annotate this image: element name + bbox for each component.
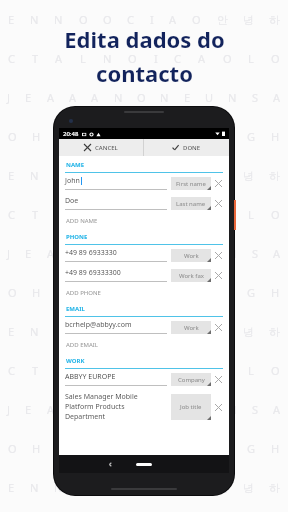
staticText: N [30, 12, 39, 27]
button[interactable]: First name [171, 177, 211, 190]
staticText: H [271, 129, 280, 144]
staticText: O [199, 129, 208, 144]
staticText: C [174, 207, 181, 222]
staticText: S [252, 246, 259, 261]
staticText: Work [184, 252, 199, 260]
button[interactable]: Doe [59, 193, 229, 213]
staticText: L [248, 51, 254, 66]
staticText: N [103, 51, 112, 66]
staticText: A [69, 90, 77, 105]
staticText: C [127, 168, 134, 183]
staticText: L [248, 207, 254, 222]
staticText: A [55, 207, 63, 222]
button[interactable]: Sales Manager Mobile [59, 389, 229, 425]
staticText: E [25, 90, 32, 105]
staticText: A [169, 168, 177, 183]
button[interactable]: ADD NAME [59, 213, 229, 228]
button[interactable]: Delete field [214, 323, 223, 332]
staticText: C [8, 363, 15, 378]
staticText: E [25, 246, 32, 261]
staticText: B [176, 441, 184, 456]
button[interactable]: Delete field [214, 271, 223, 280]
staticText: Platform Products [65, 402, 125, 412]
staticText: A [47, 402, 55, 417]
staticText: A [47, 246, 55, 261]
staticText: I [150, 12, 154, 27]
staticText: E [184, 90, 191, 105]
button[interactable]: Work fax [171, 269, 211, 282]
staticText: O [128, 51, 137, 66]
button[interactable]: Delete field [214, 251, 223, 260]
button[interactable]: +49 89 69333300 [59, 265, 229, 285]
staticText: C [127, 324, 134, 339]
staticText: N [223, 285, 232, 300]
staticText: Last name [176, 200, 206, 208]
staticText: U [205, 402, 214, 417]
button[interactable]: DONE [144, 139, 229, 156]
staticText: WORK [66, 357, 85, 365]
button[interactable]: ABBYY EUROPE [59, 369, 229, 389]
staticText: CANCEL [95, 144, 118, 152]
staticText: O [137, 90, 146, 105]
button[interactable]: Delete field [214, 403, 223, 412]
staticText: N [228, 246, 237, 261]
button[interactable]: bcrhelp@abbyy.com [59, 317, 229, 337]
staticText: 하 [269, 481, 280, 495]
button[interactable]: Delete field [214, 375, 223, 384]
button[interactable]: Delete field [214, 199, 223, 208]
staticText: C [127, 12, 134, 27]
staticText: N [228, 90, 237, 105]
staticText: H [32, 129, 41, 144]
staticText: 好 [150, 130, 161, 144]
staticText: O [192, 168, 201, 183]
staticText: PHONE [66, 233, 88, 241]
button[interactable]: +49 89 6933330 [59, 245, 229, 265]
staticText: A [91, 246, 99, 261]
staticText: A [198, 363, 206, 378]
button[interactable]: Work [171, 321, 211, 334]
staticText: ADD NAME [66, 217, 98, 225]
staticText: O [128, 207, 137, 222]
button[interactable]: John [59, 173, 229, 193]
staticText: O [79, 168, 88, 183]
staticText: O [192, 12, 201, 27]
staticText: E [25, 402, 32, 417]
staticText: Job title [180, 403, 202, 411]
button[interactable]: CANCEL [59, 139, 143, 156]
staticText: 안 [217, 325, 228, 339]
button[interactable]: Company [171, 373, 211, 386]
staticText: N [228, 402, 237, 417]
button[interactable]: ADD PHONE [59, 285, 229, 300]
staticText: O [103, 168, 112, 183]
button[interactable]: Work [171, 249, 211, 262]
staticText: N [54, 12, 63, 27]
button[interactable]: ADD EMAIL [59, 337, 229, 352]
staticText: G [247, 441, 256, 456]
staticText: Work fax [179, 272, 204, 280]
staticText: I [154, 51, 158, 66]
staticText: Doe [65, 196, 79, 206]
staticText: 안 [217, 13, 228, 27]
staticText: L [80, 51, 86, 66]
staticText: L [80, 129, 86, 144]
staticText: bcrhelp@abbyy.com [65, 320, 132, 330]
staticText: E [8, 12, 15, 27]
staticText: S [252, 90, 259, 105]
staticText: 안 [217, 481, 228, 495]
staticText: 好 [150, 442, 161, 456]
staticText: L [80, 285, 86, 300]
staticText: S [252, 402, 259, 417]
staticText: O [103, 324, 112, 339]
staticText: Edita dados do [64, 24, 225, 54]
button[interactable]: Last name [171, 197, 211, 210]
button[interactable]: Delete field [214, 179, 223, 188]
staticText: E [8, 168, 15, 183]
